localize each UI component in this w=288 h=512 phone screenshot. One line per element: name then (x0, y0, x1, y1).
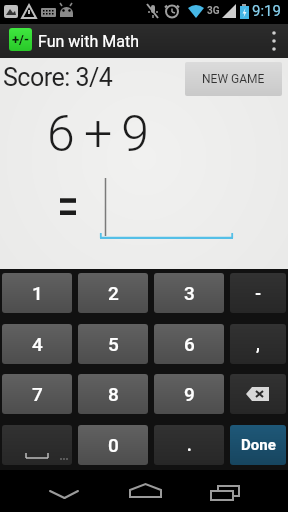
button[interactable] (230, 374, 286, 414)
staticText: 9:19 (252, 2, 281, 20)
button[interactable]: 4 (2, 324, 72, 364)
staticText: 7 (32, 383, 43, 405)
button[interactable] (2, 425, 72, 465)
staticText: Fun with Math (38, 32, 139, 51)
button[interactable]: Done (230, 425, 286, 465)
staticText: 1 (32, 282, 43, 304)
button[interactable]: 9 (154, 374, 224, 414)
staticText: 3G (207, 5, 220, 17)
button[interactable] (40, 470, 88, 512)
button[interactable]: 7 (2, 374, 72, 414)
staticText: 8 (108, 383, 119, 405)
button[interactable]: 2 (78, 273, 148, 313)
button[interactable] (260, 24, 288, 58)
button[interactable]: 0 (78, 425, 148, 465)
staticText: 5 (108, 333, 119, 355)
button[interactable] (200, 470, 248, 512)
staticText: 6 (184, 333, 195, 355)
button[interactable] (120, 470, 168, 512)
staticText: 0 (108, 434, 119, 456)
staticText: 3 (184, 282, 195, 304)
staticText: Score: 3/4 (3, 63, 113, 92)
staticText: 4 (32, 333, 43, 355)
button[interactable]: 6 (154, 324, 224, 364)
staticText: , (256, 335, 260, 354)
button[interactable]: 5 (78, 324, 148, 364)
staticText: NEW GAME (202, 72, 265, 86)
staticText: - (255, 284, 262, 303)
staticText: +/- (12, 32, 30, 47)
staticText: . (187, 436, 192, 455)
button[interactable]: NEW GAME (185, 62, 282, 96)
button[interactable]: 8 (78, 374, 148, 414)
button[interactable]: - (230, 273, 286, 313)
button[interactable]: 1 (2, 273, 72, 313)
staticText: 6 + 9 (47, 105, 148, 164)
button[interactable]: , (230, 324, 286, 364)
staticText: Done (241, 436, 276, 454)
button[interactable]: . (154, 425, 224, 465)
button[interactable]: 3 (154, 273, 224, 313)
staticText: 9 (184, 383, 195, 405)
staticText: 2 (108, 282, 119, 304)
